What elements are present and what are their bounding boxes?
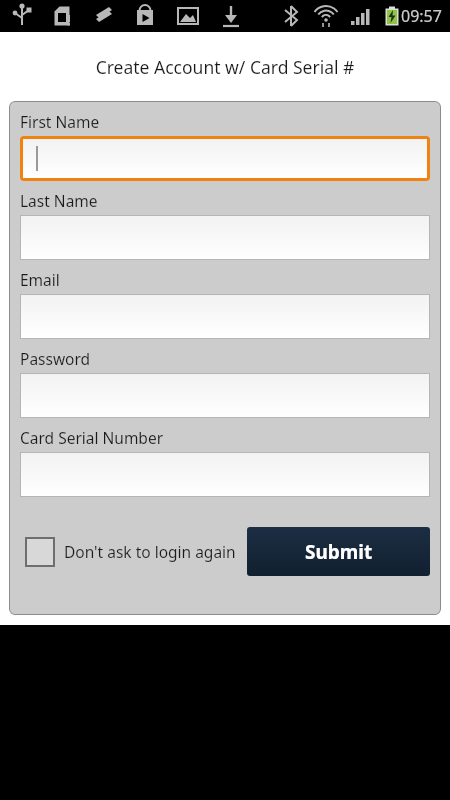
button[interactable] xyxy=(20,215,430,260)
button[interactable]: Don't ask to login again checkbox xyxy=(25,537,55,567)
button[interactable] xyxy=(20,294,430,339)
staticText: First Name xyxy=(20,111,100,132)
staticText: 09:57 xyxy=(401,5,442,27)
staticText: Email xyxy=(20,269,60,290)
staticText: Submit xyxy=(305,539,373,565)
staticText: Card Serial Number xyxy=(20,427,164,448)
staticText: Create Account w/ Card Serial # xyxy=(0,55,450,79)
staticText: Password xyxy=(20,348,91,369)
button[interactable]: Submit xyxy=(247,527,430,576)
staticText: Last Name xyxy=(20,190,98,211)
button[interactable] xyxy=(23,139,427,178)
button[interactable] xyxy=(20,452,430,497)
button[interactable]: Don't ask to login again xyxy=(64,541,236,562)
button[interactable] xyxy=(20,373,430,418)
